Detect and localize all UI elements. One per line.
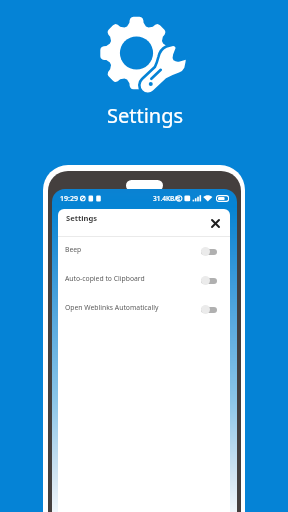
button[interactable]: Close — [207, 215, 223, 231]
staticText: Settings — [1, 102, 288, 129]
staticText: 31.4KB/s — [153, 194, 180, 203]
other: Settings icon — [90, 8, 198, 104]
button[interactable]: Beep — [58, 237, 230, 266]
staticText: Auto-copied to Clipboard — [65, 274, 145, 283]
button[interactable]: Open Weblinks Automatically — [58, 295, 230, 324]
button[interactable]: Auto-copied to Clipboard — [58, 266, 230, 295]
staticText: 19:29 — [60, 194, 78, 204]
staticText: Settings — [66, 213, 98, 223]
staticText: Open Weblinks Automatically — [65, 303, 159, 312]
staticText: Beep — [65, 245, 82, 254]
